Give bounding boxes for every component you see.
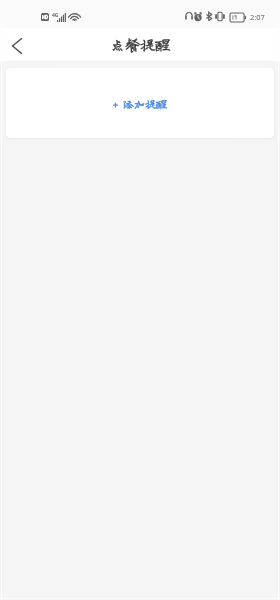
button[interactable]: Back xyxy=(0,28,34,61)
staticText: 4G xyxy=(52,12,59,19)
staticText: 点餐提醒 xyxy=(110,37,171,52)
staticText: 2:07 xyxy=(250,12,265,22)
staticText: 添加提醒 xyxy=(123,98,167,109)
button[interactable]: 添加提醒 xyxy=(6,68,274,138)
staticText: 添加提醒 xyxy=(123,98,167,109)
staticText: 点餐提醒 xyxy=(110,37,171,52)
